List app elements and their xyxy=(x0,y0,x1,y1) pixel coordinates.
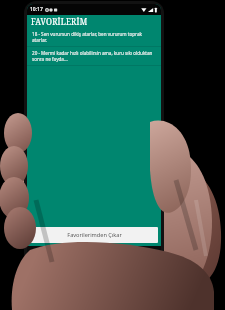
button[interactable]: 20 - Mermi kadar hızlı olabilirsin ama, … xyxy=(27,47,161,65)
staticText: 18 - Sen vurursun dikiş atarlar, ben vur… xyxy=(32,31,156,43)
button[interactable]: Recents xyxy=(124,246,140,262)
button[interactable]: Favorilerimden Çıkar xyxy=(30,227,158,243)
button[interactable]: Back xyxy=(49,246,65,262)
button[interactable]: 18 - Sen vurursun dikiş atarlar, ben vur… xyxy=(27,28,161,46)
staticText: Favorilerimden Çıkar xyxy=(67,231,122,239)
staticText: 10:17 xyxy=(30,6,43,13)
staticText: 20 - Mermi kadar hızlı olabilirsin ama, … xyxy=(32,50,156,62)
staticText: FAVORİLERİM xyxy=(31,16,88,27)
